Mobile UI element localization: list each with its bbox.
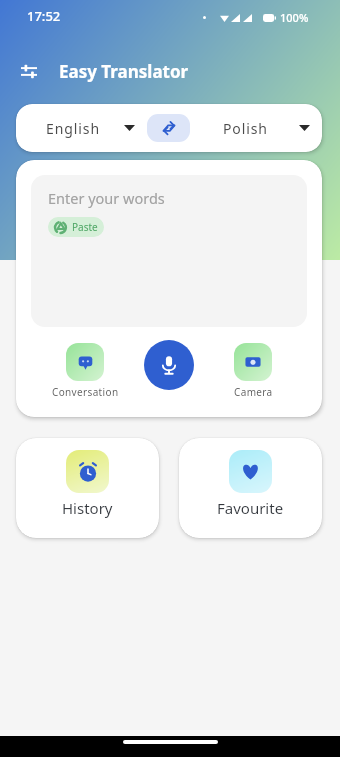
staticText: 17:52 bbox=[27, 7, 61, 25]
other: Translate options bbox=[21, 63, 37, 80]
button[interactable]: Conversation bbox=[43, 343, 127, 399]
staticText: Polish bbox=[223, 119, 268, 138]
button[interactable]: History bbox=[16, 438, 159, 538]
button[interactable]: Favourite bbox=[179, 438, 322, 538]
button[interactable]: Voice input bbox=[144, 340, 194, 390]
staticText: Favourite bbox=[217, 498, 284, 518]
staticText: Easy Translator bbox=[59, 60, 189, 83]
button[interactable]: Camera bbox=[211, 343, 295, 399]
staticText: Enter your words bbox=[48, 188, 165, 208]
staticText: History bbox=[62, 498, 113, 518]
button[interactable]: Paste bbox=[48, 217, 104, 237]
button[interactable]: English bbox=[16, 104, 147, 152]
button[interactable]: Enter your words bbox=[31, 175, 307, 327]
button[interactable]: Polish bbox=[190, 104, 322, 152]
staticText: English bbox=[46, 119, 100, 138]
staticText: Paste bbox=[72, 220, 98, 234]
staticText: 100% bbox=[280, 10, 309, 25]
button[interactable]: Swap languages bbox=[147, 114, 190, 142]
staticText: Conversation bbox=[52, 385, 119, 399]
staticText: Camera bbox=[234, 385, 273, 399]
